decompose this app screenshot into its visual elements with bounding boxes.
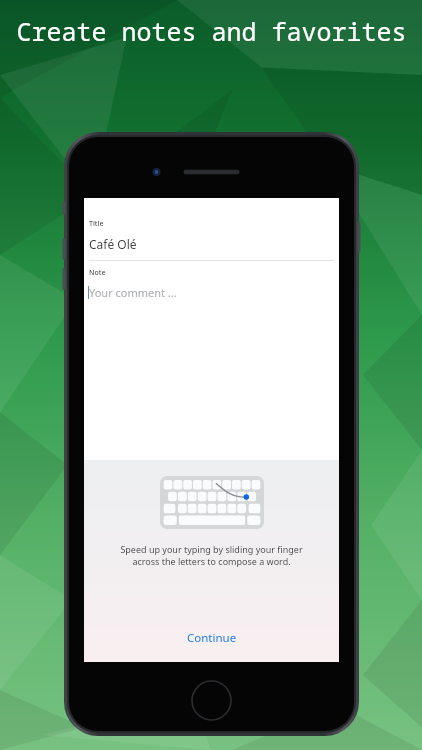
staticText: Your comment ...	[89, 285, 177, 300]
staticText: Title	[89, 219, 104, 229]
staticText: Café Olé	[89, 236, 137, 252]
staticText: Continue	[187, 630, 237, 646]
button[interactable]: Continue	[161, 623, 263, 653]
staticText: Note	[89, 268, 106, 278]
button[interactable]: Home	[191, 680, 232, 721]
staticText: Speed up your typing by sliding your fin…	[120, 543, 303, 568]
staticText: Create notes and favorites	[16, 14, 407, 48]
